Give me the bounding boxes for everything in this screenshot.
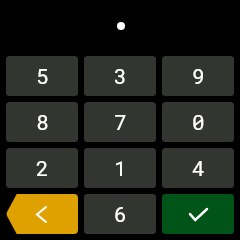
- staticText: 6: [114, 200, 127, 228]
- staticText: 8: [36, 108, 49, 136]
- staticText: 7: [114, 108, 127, 136]
- staticText: 4: [192, 154, 205, 182]
- staticText: 5: [36, 62, 49, 90]
- staticText: 2: [36, 154, 49, 182]
- button[interactable]: 5: [6, 56, 78, 96]
- button[interactable]: 7: [84, 102, 156, 142]
- staticText: 0: [192, 108, 205, 136]
- button[interactable]: Confirm: [162, 194, 234, 234]
- button[interactable]: 2: [6, 148, 78, 188]
- button[interactable]: 3: [84, 56, 156, 96]
- button[interactable]: 0: [162, 102, 234, 142]
- button[interactable]: 8: [6, 102, 78, 142]
- staticText: 9: [192, 62, 205, 90]
- staticText: 3: [114, 62, 127, 90]
- button[interactable]: 9: [162, 56, 234, 96]
- button[interactable]: Delete: [6, 194, 78, 234]
- button[interactable]: 1: [84, 148, 156, 188]
- staticText: 1: [114, 154, 127, 182]
- button[interactable]: 6: [84, 194, 156, 234]
- button[interactable]: 4: [162, 148, 234, 188]
